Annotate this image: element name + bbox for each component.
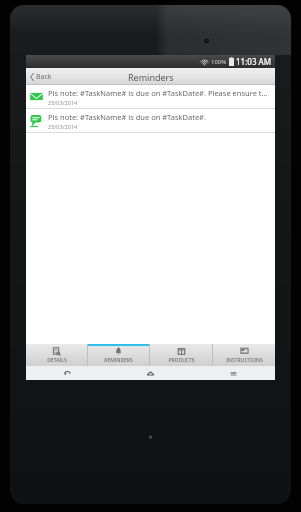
button[interactable]: Pls note: #TaskName# is due on #TaskDate… <box>26 85 275 108</box>
staticText: PRODUCTS <box>168 357 195 364</box>
staticText: Pls note: #TaskName# is due on #TaskDate… <box>48 88 271 98</box>
staticText: Pls note: #TaskName# is due on #TaskDate… <box>48 112 206 122</box>
button[interactable]: Home <box>109 366 192 380</box>
staticText: Reminders <box>128 71 174 83</box>
staticText: 25/03/2014 <box>48 99 78 106</box>
button[interactable]: DETAILS <box>26 344 87 366</box>
button[interactable]: Back <box>26 68 56 85</box>
staticText: 11:03 AM <box>236 56 272 67</box>
staticText: Back <box>36 72 52 82</box>
staticText: 100% <box>211 58 227 66</box>
staticText: 25/03/2014 <box>48 123 78 130</box>
button[interactable]: REMINDERS <box>88 344 149 366</box>
button[interactable]: PRODUCTS <box>150 344 212 366</box>
staticText: INSTRUCTIONS <box>226 357 263 364</box>
button[interactable]: Recent apps <box>192 366 275 380</box>
button[interactable]: INSTRUCTIONS <box>213 344 275 366</box>
staticText: REMINDERS <box>104 357 133 364</box>
button[interactable]: Pls note: #TaskName# is due on #TaskDate… <box>26 109 275 132</box>
staticText: DETAILS <box>47 357 67 364</box>
button[interactable]: Back <box>26 366 109 380</box>
